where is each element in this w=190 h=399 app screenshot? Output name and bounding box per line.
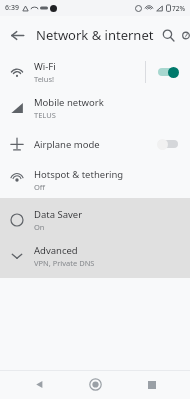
staticText: 6:39 [5, 3, 19, 13]
staticText: ? [184, 30, 188, 41]
button[interactable]: Mobile network [0, 90, 190, 126]
button[interactable]: Hotspot & tethering [0, 162, 190, 198]
staticText: Network & internet [36, 26, 154, 44]
button[interactable]: Back [21, 370, 57, 399]
staticText: Telus! [34, 74, 55, 84]
button[interactable]: Advanced [0, 238, 190, 274]
staticText: Wi-Fi [34, 60, 56, 73]
staticText: TELUS [34, 110, 56, 120]
staticText: Hotspot & tethering [34, 168, 124, 181]
button[interactable]: Home [77, 370, 113, 399]
button[interactable]: Toggle Airplane mode [146, 126, 190, 162]
button[interactable]: Airplane mode [0, 126, 190, 162]
staticText: Mobile network [34, 96, 104, 109]
staticText: Advanced [34, 244, 78, 257]
button[interactable]: Wi-Fi [0, 54, 190, 90]
staticText: VPN, Private DNS [34, 258, 95, 268]
button[interactable]: Back [0, 18, 34, 52]
staticText: 72% [172, 4, 185, 13]
staticText: Airplane mode [34, 138, 100, 151]
button[interactable]: Toggle Wi-Fi [146, 54, 190, 90]
button[interactable]: Help [182, 20, 190, 50]
button[interactable]: Data Saver [0, 202, 190, 238]
button[interactable]: Search [154, 21, 182, 49]
staticText: Data Saver [34, 208, 83, 221]
staticText: Off [34, 182, 46, 192]
button[interactable]: Recent apps [134, 370, 170, 399]
staticText: On [34, 222, 45, 232]
